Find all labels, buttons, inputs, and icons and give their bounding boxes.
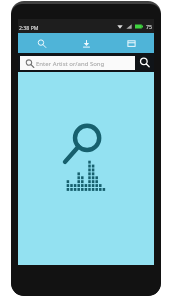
staticText: 75: [146, 23, 152, 30]
staticText: Enter Artist or/and Song: [36, 60, 105, 68]
button[interactable]: Downloads: [64, 33, 109, 53]
button[interactable]: Library: [109, 33, 154, 53]
button[interactable]: Search: [18, 33, 64, 53]
button[interactable]: Enter Artist or/and Song: [20, 56, 135, 70]
staticText: 2:38 PM: [19, 24, 39, 31]
button[interactable]: Search: [135, 53, 154, 72]
